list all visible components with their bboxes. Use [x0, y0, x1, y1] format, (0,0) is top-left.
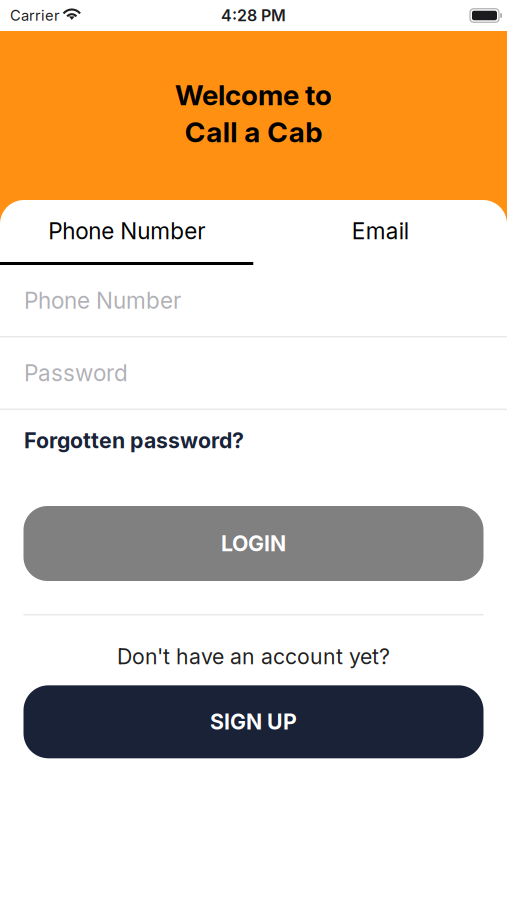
button[interactable]: LOGIN	[23, 506, 483, 581]
staticText: LOGIN	[221, 531, 286, 556]
button[interactable]: Forgotten password?	[0, 410, 507, 471]
staticText: 4:28 PM	[221, 6, 286, 25]
button[interactable]: Email	[253, 200, 507, 265]
staticText: Forgotten password?	[24, 428, 244, 453]
button[interactable]: Phone Number	[0, 200, 253, 265]
staticText: Email	[352, 217, 409, 245]
staticText: Phone Number	[24, 287, 181, 314]
staticText: Carrier	[10, 7, 60, 24]
staticText: Password	[24, 359, 128, 387]
button[interactable]: Phone Number	[0, 265, 507, 337]
button[interactable]: Password	[0, 337, 507, 410]
button[interactable]: SIGN UP	[23, 685, 483, 758]
staticText: Call a Cab	[185, 115, 322, 149]
staticText: SIGN UP	[210, 709, 297, 735]
staticText: Welcome to	[175, 78, 332, 112]
staticText: Don't have an account yet?	[117, 643, 390, 669]
staticText: Phone Number	[48, 217, 205, 245]
